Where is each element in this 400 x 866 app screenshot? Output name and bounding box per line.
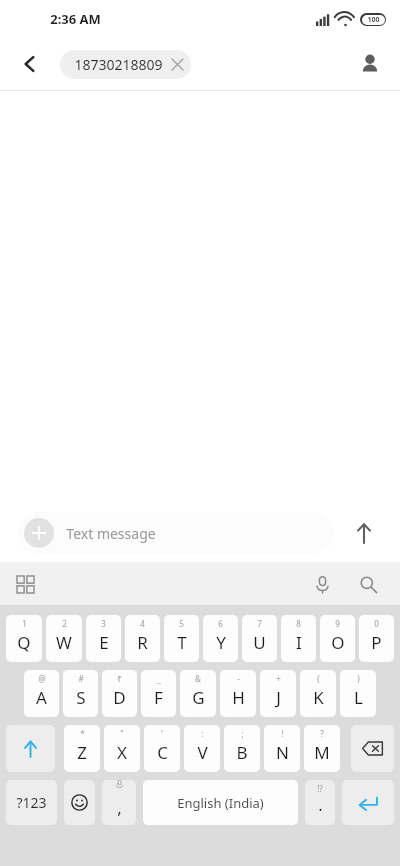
- staticText: O: [331, 631, 345, 654]
- staticText: *: [80, 728, 85, 739]
- staticText: (: [317, 673, 320, 684]
- staticText: D: [113, 686, 126, 709]
- staticText: 2: [62, 618, 67, 629]
- staticText: 5: [179, 618, 184, 629]
- button[interactable]: Emoji: [64, 780, 95, 825]
- staticText: 18730218809: [74, 55, 163, 74]
- staticText: :: [201, 728, 204, 739]
- staticText: &: [195, 673, 201, 684]
- staticText: 8: [296, 618, 301, 629]
- button[interactable]: 6: [203, 615, 238, 662]
- button[interactable]: 7: [242, 615, 277, 662]
- button[interactable]: 3: [86, 615, 121, 662]
- staticText: P: [371, 631, 382, 654]
- staticText: A: [36, 686, 47, 709]
- button[interactable]: 5: [164, 615, 199, 662]
- staticText: Z: [77, 741, 87, 764]
- button[interactable]: Send: [344, 513, 384, 553]
- staticText: @: [38, 673, 46, 684]
- staticText: 0: [374, 618, 379, 629]
- staticText: ;: [241, 728, 244, 739]
- button[interactable]: ": [104, 725, 140, 772]
- button[interactable]: 0: [359, 615, 394, 662]
- button[interactable]: Attach: [24, 518, 54, 548]
- staticText: 9: [335, 618, 340, 629]
- button[interactable]: 9: [320, 615, 355, 662]
- staticText: W: [56, 631, 72, 654]
- staticText: S: [76, 686, 86, 709]
- button[interactable]: 4: [125, 615, 160, 662]
- button[interactable]: ;: [224, 725, 260, 772]
- staticText: ?123: [16, 793, 47, 812]
- staticText: T: [177, 631, 187, 654]
- button[interactable]: Keyboard options: [8, 567, 42, 601]
- staticText: !: [281, 728, 284, 739]
- button[interactable]: _: [141, 670, 176, 717]
- staticText: F: [154, 686, 163, 709]
- staticText: ): [357, 673, 360, 684]
- button[interactable]: !?: [305, 780, 335, 825]
- button[interactable]: (: [300, 670, 336, 717]
- button[interactable]: Shift: [6, 725, 55, 772]
- staticText: 2:36 AM: [50, 10, 101, 28]
- button[interactable]: Voice input: [304, 566, 340, 602]
- button[interactable]: -: [220, 670, 256, 717]
- button[interactable]: *: [64, 725, 100, 772]
- button[interactable]: ?123: [6, 780, 57, 825]
- staticText: -: [237, 673, 240, 684]
- button[interactable]: +: [260, 670, 296, 717]
- button[interactable]: Attach: [18, 512, 334, 554]
- button[interactable]: Enter: [342, 780, 394, 825]
- staticText: Q: [17, 631, 31, 654]
- button[interactable]: English (India): [143, 780, 298, 825]
- button[interactable]: Contact: [350, 44, 390, 84]
- button[interactable]: Search: [350, 566, 386, 602]
- staticText: .: [318, 793, 323, 816]
- button[interactable]: ': [144, 725, 180, 772]
- button[interactable]: #: [63, 670, 98, 717]
- button[interactable]: !: [264, 725, 300, 772]
- staticText: K: [313, 686, 324, 709]
- staticText: U: [253, 631, 266, 654]
- button[interactable]: @: [24, 670, 59, 717]
- staticText: ,: [117, 796, 122, 819]
- staticText: +: [276, 673, 281, 684]
- staticText: E: [99, 631, 109, 654]
- button[interactable]: &: [180, 670, 216, 717]
- staticText: ₹: [117, 673, 122, 684]
- staticText: I: [296, 631, 302, 654]
- staticText: H: [232, 686, 245, 709]
- button[interactable]: Backspace: [351, 725, 394, 772]
- button[interactable]: ): [340, 670, 376, 717]
- staticText: #: [78, 673, 84, 684]
- button[interactable]: ₹: [102, 670, 137, 717]
- button[interactable]: Back: [10, 44, 50, 84]
- staticText: ?: [320, 728, 324, 739]
- button[interactable]: 18730218809: [60, 50, 191, 79]
- staticText: X: [117, 741, 127, 764]
- staticText: B: [236, 741, 248, 764]
- staticText: Y: [216, 631, 226, 654]
- button[interactable]: ?: [304, 725, 340, 772]
- staticText: ": [120, 728, 124, 739]
- button[interactable]: 2: [46, 615, 82, 662]
- staticText: J: [276, 686, 281, 709]
- button[interactable]: 1: [6, 615, 42, 662]
- staticText: G: [192, 686, 205, 709]
- staticText: N: [276, 741, 289, 764]
- button[interactable]: 8: [281, 615, 316, 662]
- staticText: ': [161, 728, 163, 739]
- staticText: 4: [140, 618, 145, 629]
- staticText: V: [197, 741, 208, 764]
- button[interactable]: Comma and voice: [102, 780, 136, 825]
- staticText: 100: [367, 15, 380, 25]
- staticText: _: [157, 673, 161, 684]
- staticText: M: [314, 741, 330, 764]
- staticText: 6: [218, 618, 223, 629]
- staticText: 1: [22, 618, 27, 629]
- staticText: L: [354, 686, 363, 709]
- staticText: C: [157, 741, 168, 764]
- button[interactable]: :: [184, 725, 220, 772]
- staticText: Text message: [66, 524, 156, 543]
- staticText: 7: [257, 618, 262, 629]
